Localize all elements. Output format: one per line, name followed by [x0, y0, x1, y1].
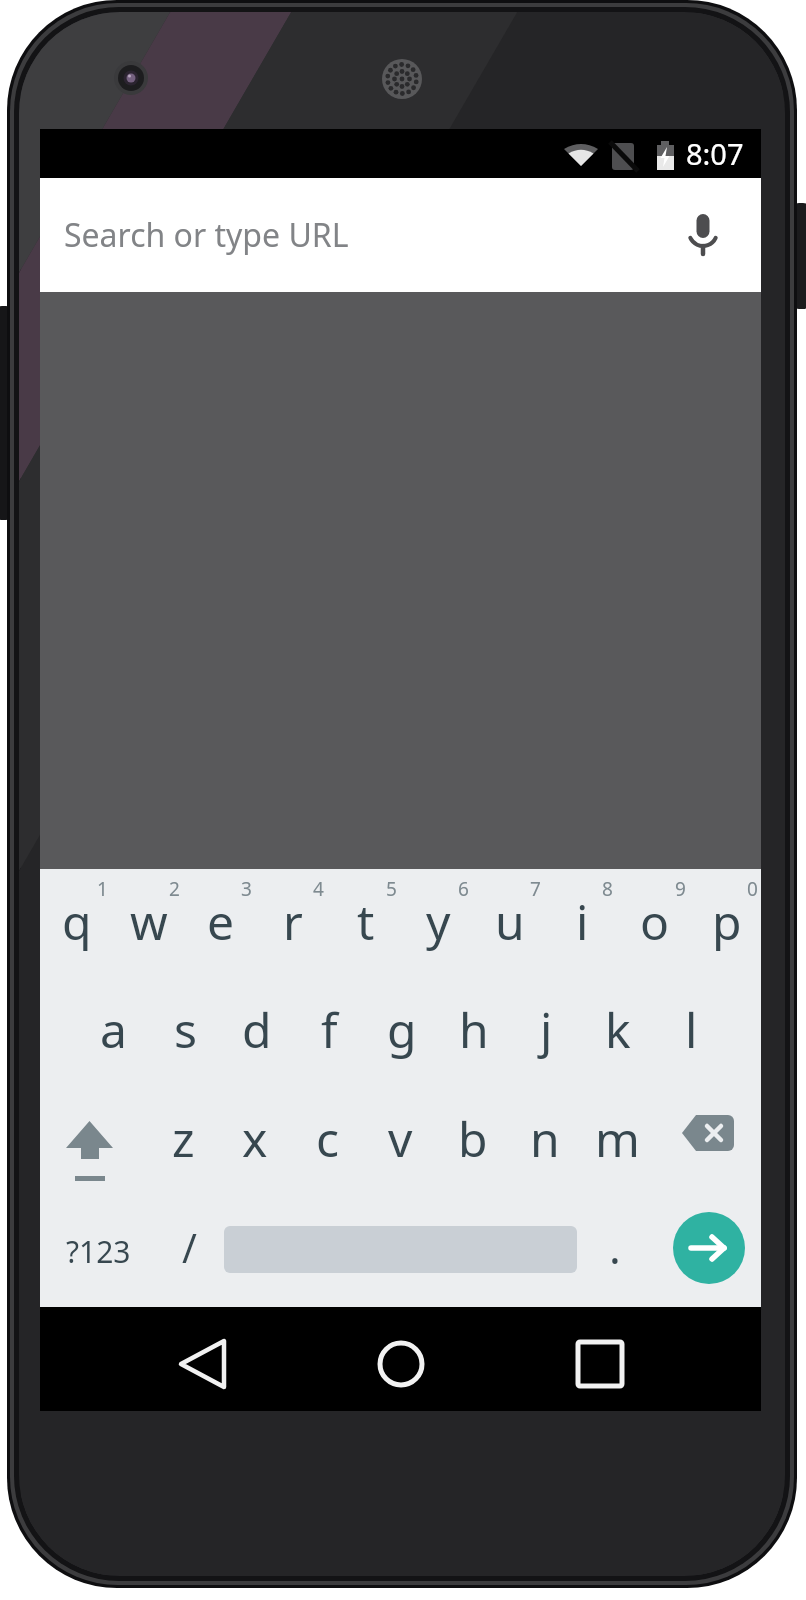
staticText: 6 — [458, 876, 469, 902]
staticText: ?123 — [66, 1231, 131, 1272]
button[interactable]: a — [80, 977, 146, 1081]
button[interactable]: y — [405, 869, 471, 973]
staticText: f — [321, 997, 338, 1062]
button[interactable]: q — [44, 869, 110, 973]
staticText: b — [458, 1106, 488, 1171]
button[interactable]: Search or type URL — [40, 178, 761, 292]
staticText: d — [242, 997, 272, 1062]
staticText: 0 — [747, 876, 758, 902]
button[interactable]: w — [116, 869, 182, 973]
button[interactable]: p — [694, 869, 760, 973]
staticText: n — [530, 1106, 560, 1171]
staticText: 1 — [97, 876, 108, 902]
button[interactable] — [673, 1212, 745, 1284]
button[interactable] — [361, 1324, 441, 1404]
staticText: z — [172, 1106, 195, 1171]
button[interactable]: o — [622, 869, 688, 973]
button[interactable] — [163, 1324, 243, 1404]
staticText: t — [357, 889, 375, 954]
staticText: v — [388, 1106, 413, 1171]
staticText: w — [130, 889, 168, 954]
staticText: i — [576, 889, 589, 954]
button[interactable]: l — [658, 977, 724, 1081]
staticText: 7 — [530, 876, 541, 902]
staticText: r — [283, 889, 303, 954]
button[interactable]: / — [156, 1195, 222, 1299]
button[interactable]: x — [222, 1086, 288, 1190]
button[interactable]: . — [582, 1195, 648, 1299]
button[interactable]: t — [333, 869, 399, 973]
staticText: q — [62, 889, 92, 954]
staticText: x — [242, 1106, 268, 1171]
button[interactable]: j — [513, 977, 579, 1081]
staticText: / — [182, 1220, 197, 1274]
staticText: u — [495, 889, 525, 954]
staticText: c — [316, 1106, 340, 1171]
button[interactable]: f — [296, 977, 362, 1081]
staticText: g — [387, 997, 417, 1062]
button[interactable]: h — [441, 977, 507, 1081]
button[interactable]: g — [369, 977, 435, 1081]
staticText: 8:07 — [686, 134, 744, 173]
staticText: 2 — [169, 876, 180, 902]
button[interactable]: i — [549, 869, 615, 973]
staticText: p — [712, 889, 742, 954]
button[interactable]: n — [512, 1086, 578, 1190]
staticText: a — [100, 997, 127, 1062]
button[interactable]: u — [477, 869, 543, 973]
staticText: k — [605, 997, 631, 1062]
staticText: s — [174, 997, 197, 1062]
button[interactable]: m — [584, 1086, 650, 1190]
staticText: 4 — [313, 876, 324, 902]
staticText: 8 — [602, 876, 613, 902]
staticText: j — [540, 997, 553, 1062]
staticText: y — [426, 889, 451, 954]
button[interactable]: z — [150, 1086, 216, 1190]
staticText: m — [595, 1106, 640, 1171]
staticText: Search or type URL — [64, 213, 349, 257]
button[interactable]: v — [367, 1086, 433, 1190]
button[interactable]: d — [224, 977, 290, 1081]
button[interactable] — [58, 1111, 120, 1191]
button[interactable] — [680, 1114, 740, 1162]
staticText: h — [459, 997, 489, 1062]
button[interactable]: e — [188, 869, 254, 973]
staticText: e — [207, 889, 235, 954]
staticText: 3 — [241, 876, 252, 902]
staticText: o — [640, 889, 670, 954]
staticText: 9 — [675, 876, 686, 902]
button[interactable]: k — [585, 977, 651, 1081]
button[interactable]: b — [440, 1086, 506, 1190]
button[interactable]: c — [295, 1086, 361, 1190]
button[interactable]: r — [260, 869, 326, 973]
button[interactable]: s — [152, 977, 218, 1081]
staticText: 5 — [386, 876, 397, 902]
button[interactable]: ?123 — [58, 1221, 138, 1281]
staticText: . — [609, 1217, 621, 1277]
button[interactable] — [560, 1324, 640, 1404]
staticText: l — [685, 997, 698, 1062]
